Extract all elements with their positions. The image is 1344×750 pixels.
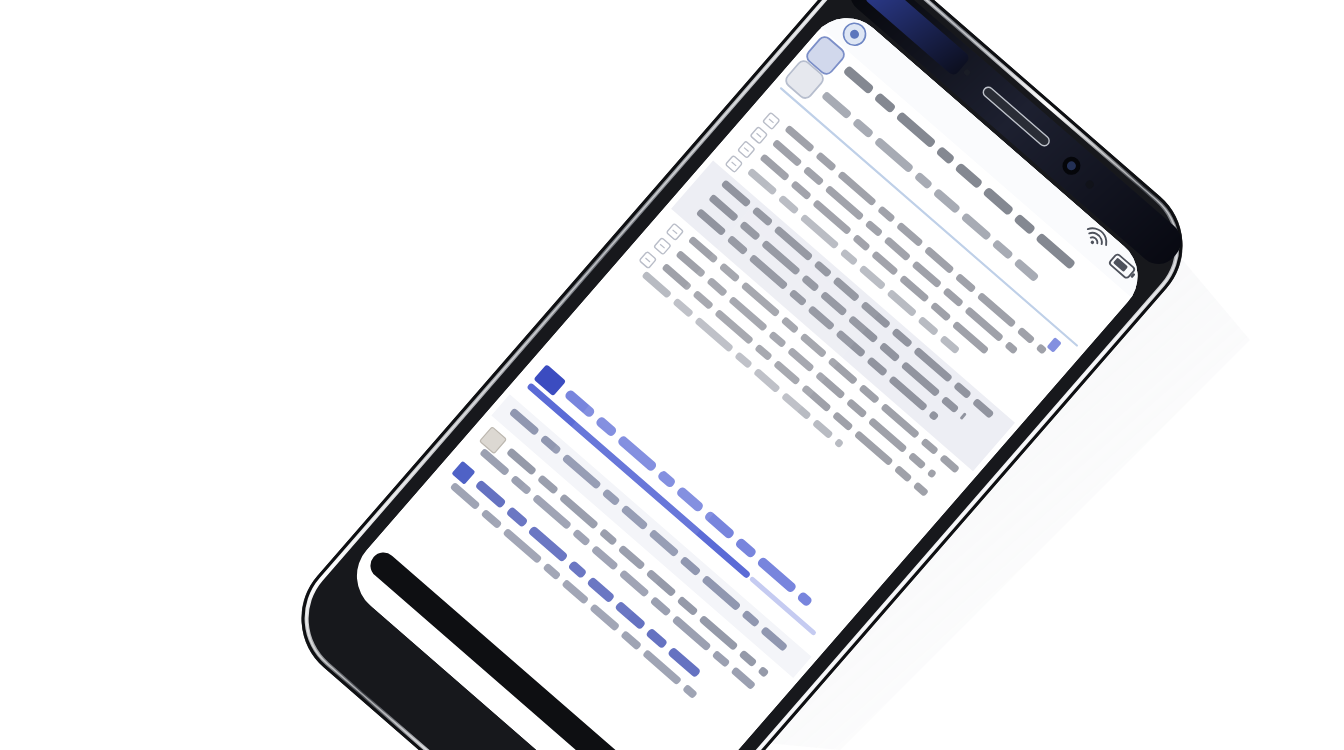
button[interactable]: Article paragraph xyxy=(645,190,1005,300)
button[interactable]: List item two xyxy=(405,588,755,646)
button[interactable]: Featured section xyxy=(480,470,850,540)
button[interactable]: Highlighted passage xyxy=(570,300,950,410)
button[interactable]: List item one xyxy=(435,535,795,593)
button[interactable]: Article header xyxy=(700,120,1030,182)
